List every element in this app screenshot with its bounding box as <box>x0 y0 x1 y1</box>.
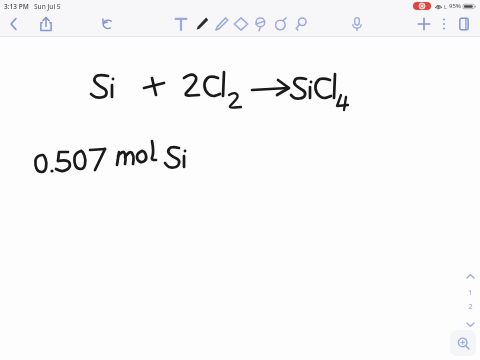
button[interactable]: Lasso select <box>252 12 270 36</box>
button[interactable]: 1 <box>468 288 473 298</box>
button[interactable]: Previous page <box>462 268 478 284</box>
button[interactable]: Share <box>34 12 58 36</box>
button[interactable]: Undo <box>96 12 120 36</box>
button[interactable]: Pen tool <box>192 12 210 36</box>
staticText: 95% <box>449 2 461 10</box>
button[interactable]: Highlighter <box>212 12 230 36</box>
button[interactable]: Zoom <box>450 330 476 356</box>
button[interactable]: Back <box>2 12 26 36</box>
button[interactable]: 2 <box>468 302 473 312</box>
button[interactable]: Add page <box>412 12 436 36</box>
button[interactable]: Next page <box>462 316 478 332</box>
button[interactable]: Dictate <box>345 12 369 36</box>
button[interactable]: Ink color <box>272 12 290 36</box>
staticText: 3:13 PM <box>4 2 29 11</box>
staticText: Sun Jul 5 <box>34 2 61 11</box>
staticText: L <box>444 3 447 10</box>
button[interactable]: More options <box>436 12 452 36</box>
button[interactable]: Text tool <box>172 12 190 36</box>
button[interactable]: Shapes <box>292 12 310 36</box>
button[interactable]: Pages <box>452 12 476 36</box>
button[interactable]: Eraser <box>232 12 250 36</box>
